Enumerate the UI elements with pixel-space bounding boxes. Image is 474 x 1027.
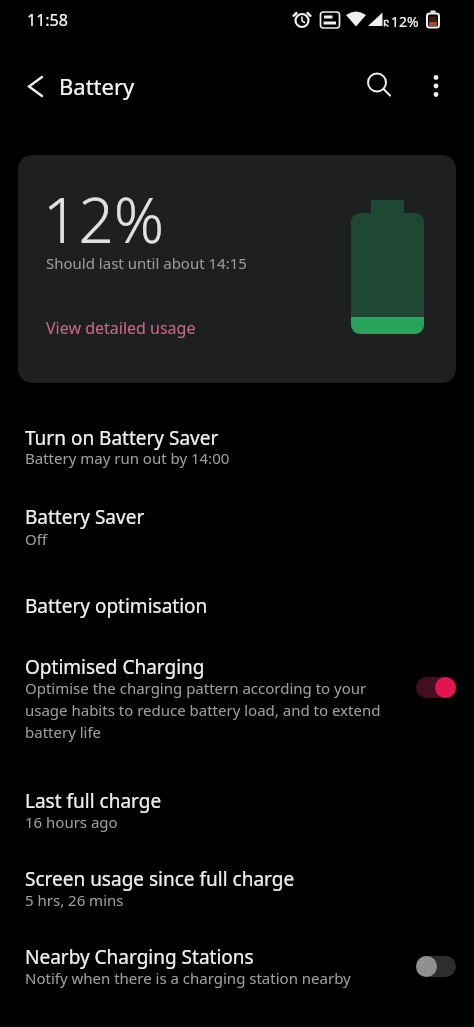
- staticText: Should last until about 14:15: [46, 253, 247, 273]
- staticText: 12%: [391, 12, 419, 31]
- button[interactable]: [416, 677, 456, 698]
- staticText: 5 hrs, 26 mins: [25, 890, 124, 910]
- staticText: 11:58: [27, 9, 68, 31]
- staticText: Battery: [59, 71, 135, 101]
- staticText: Optimise the charging pattern according …: [25, 678, 381, 743]
- staticText: Nearby Charging Stations: [25, 944, 254, 970]
- button[interactable]: Optimised Charging: [0, 642, 474, 750]
- staticText: View detailed usage: [46, 317, 196, 339]
- staticText: Screen usage since full charge: [25, 866, 295, 892]
- button[interactable]: Turn on Battery Saver: [0, 415, 474, 477]
- button[interactable]: Nearby Charging Stations: [0, 934, 474, 994]
- staticText: Battery Saver: [25, 504, 145, 530]
- staticText: Turn on Battery Saver: [25, 425, 219, 451]
- staticText: Optimised Charging: [25, 654, 205, 680]
- button[interactable]: View detailed usage: [46, 315, 196, 345]
- button[interactable]: Last full charge: [0, 778, 474, 834]
- staticText: Last full charge: [25, 788, 162, 814]
- button[interactable]: [414, 64, 458, 108]
- button[interactable]: Battery Saver: [0, 492, 474, 556]
- staticText: Off: [25, 529, 48, 549]
- button[interactable]: Screen usage since full charge: [0, 856, 474, 912]
- button[interactable]: [355, 64, 399, 108]
- staticText: 16 hours ago: [25, 812, 118, 832]
- staticText: Battery may run out by 14:00: [25, 448, 230, 468]
- staticText: Battery optimisation: [25, 593, 208, 619]
- button[interactable]: Battery optimisation: [0, 578, 474, 630]
- staticText: 12%: [43, 177, 165, 261]
- button[interactable]: [416, 956, 456, 977]
- staticText: Notify when there is a charging station …: [25, 968, 351, 988]
- button[interactable]: [14, 64, 58, 108]
